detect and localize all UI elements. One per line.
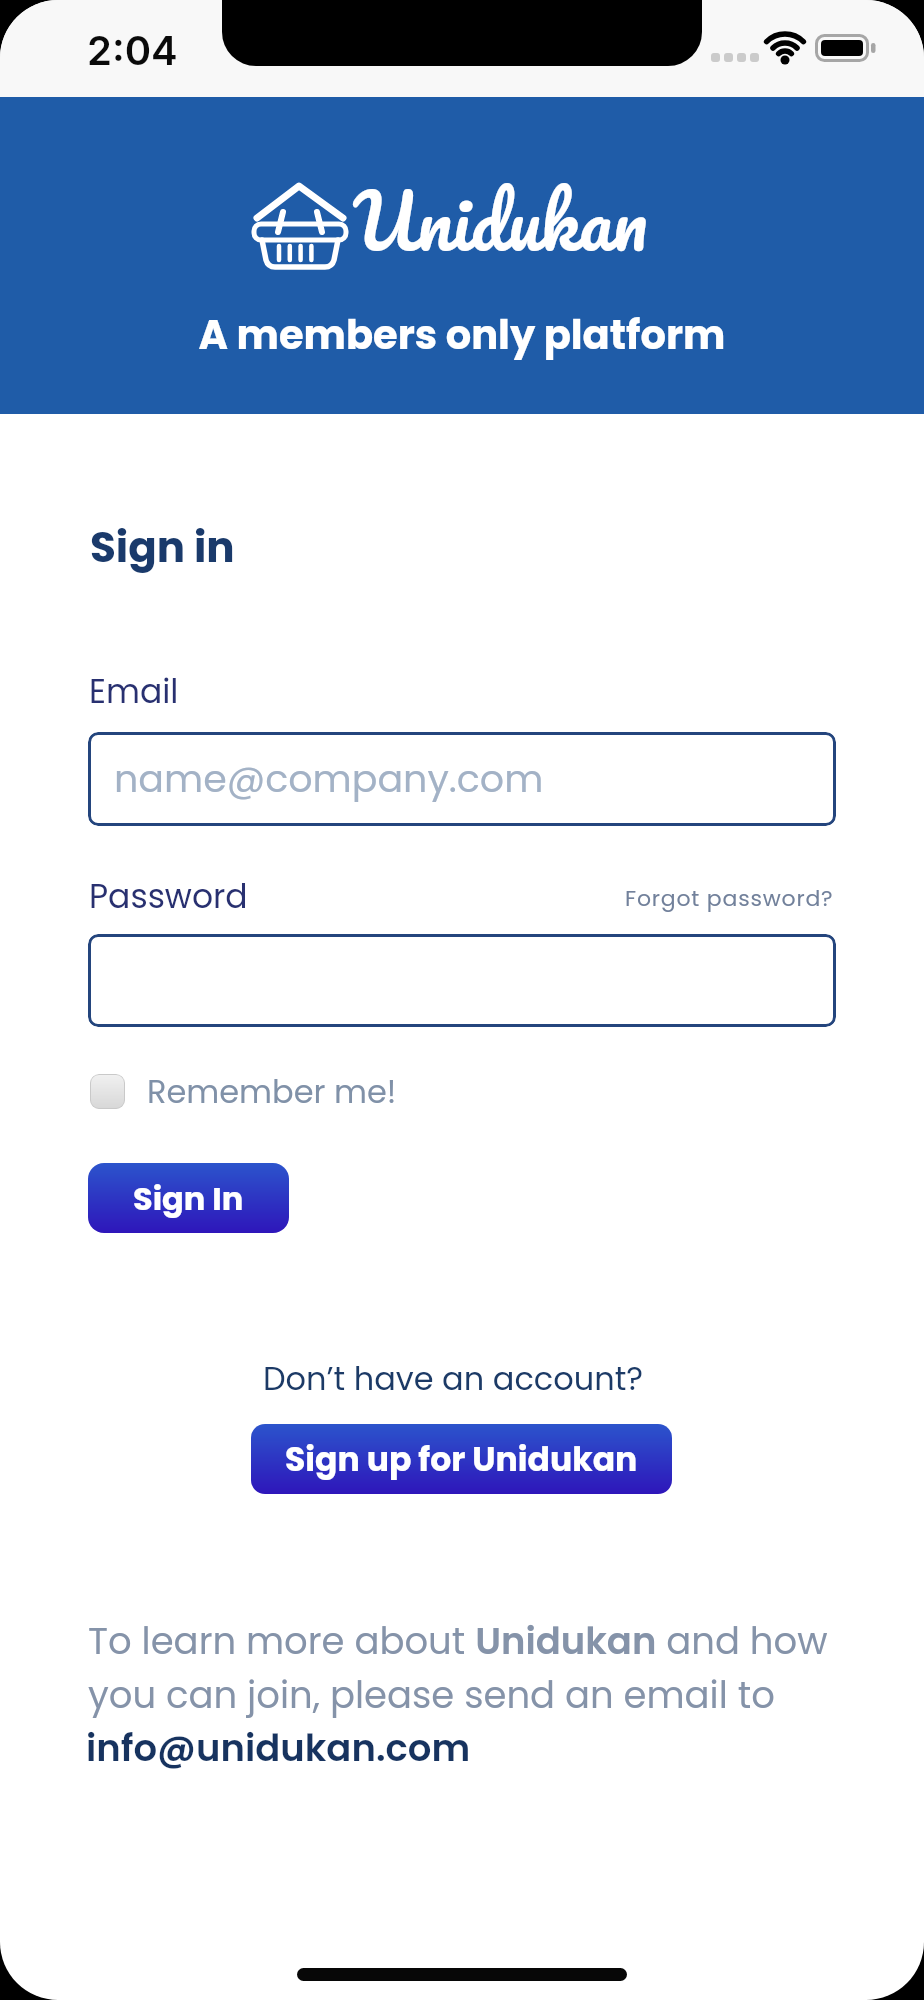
staticText: name@company.com: [114, 752, 544, 805]
staticText: you can join, please send an email to: [88, 1669, 775, 1721]
button[interactable]: Remember me!: [90, 1069, 397, 1114]
staticText: Don’t have an account?: [0, 1356, 915, 1401]
staticText: Sign In: [133, 1176, 244, 1221]
button[interactable]: Forgot password?: [625, 883, 834, 914]
staticText: To learn more about Unidukan and how: [88, 1615, 828, 1667]
button[interactable]: Sign In: [88, 1163, 289, 1233]
staticText: 2:04: [87, 26, 178, 74]
staticText: Email: [89, 668, 179, 714]
button[interactable]: Sign up for Unidukan: [251, 1424, 672, 1494]
staticText: Sign up for Unidukan: [285, 1436, 638, 1482]
staticText: info@unidukan.com: [86, 1722, 471, 1774]
staticText: Password: [89, 873, 248, 919]
staticText: A members only platform: [0, 307, 924, 363]
staticText: Unidukan: [353, 157, 648, 283]
button[interactable]: [88, 934, 836, 1027]
staticText: Forgot password?: [625, 883, 834, 914]
staticText: Remember me!: [147, 1069, 397, 1114]
staticText: Sign in: [90, 518, 235, 577]
button[interactable]: [88, 732, 836, 826]
